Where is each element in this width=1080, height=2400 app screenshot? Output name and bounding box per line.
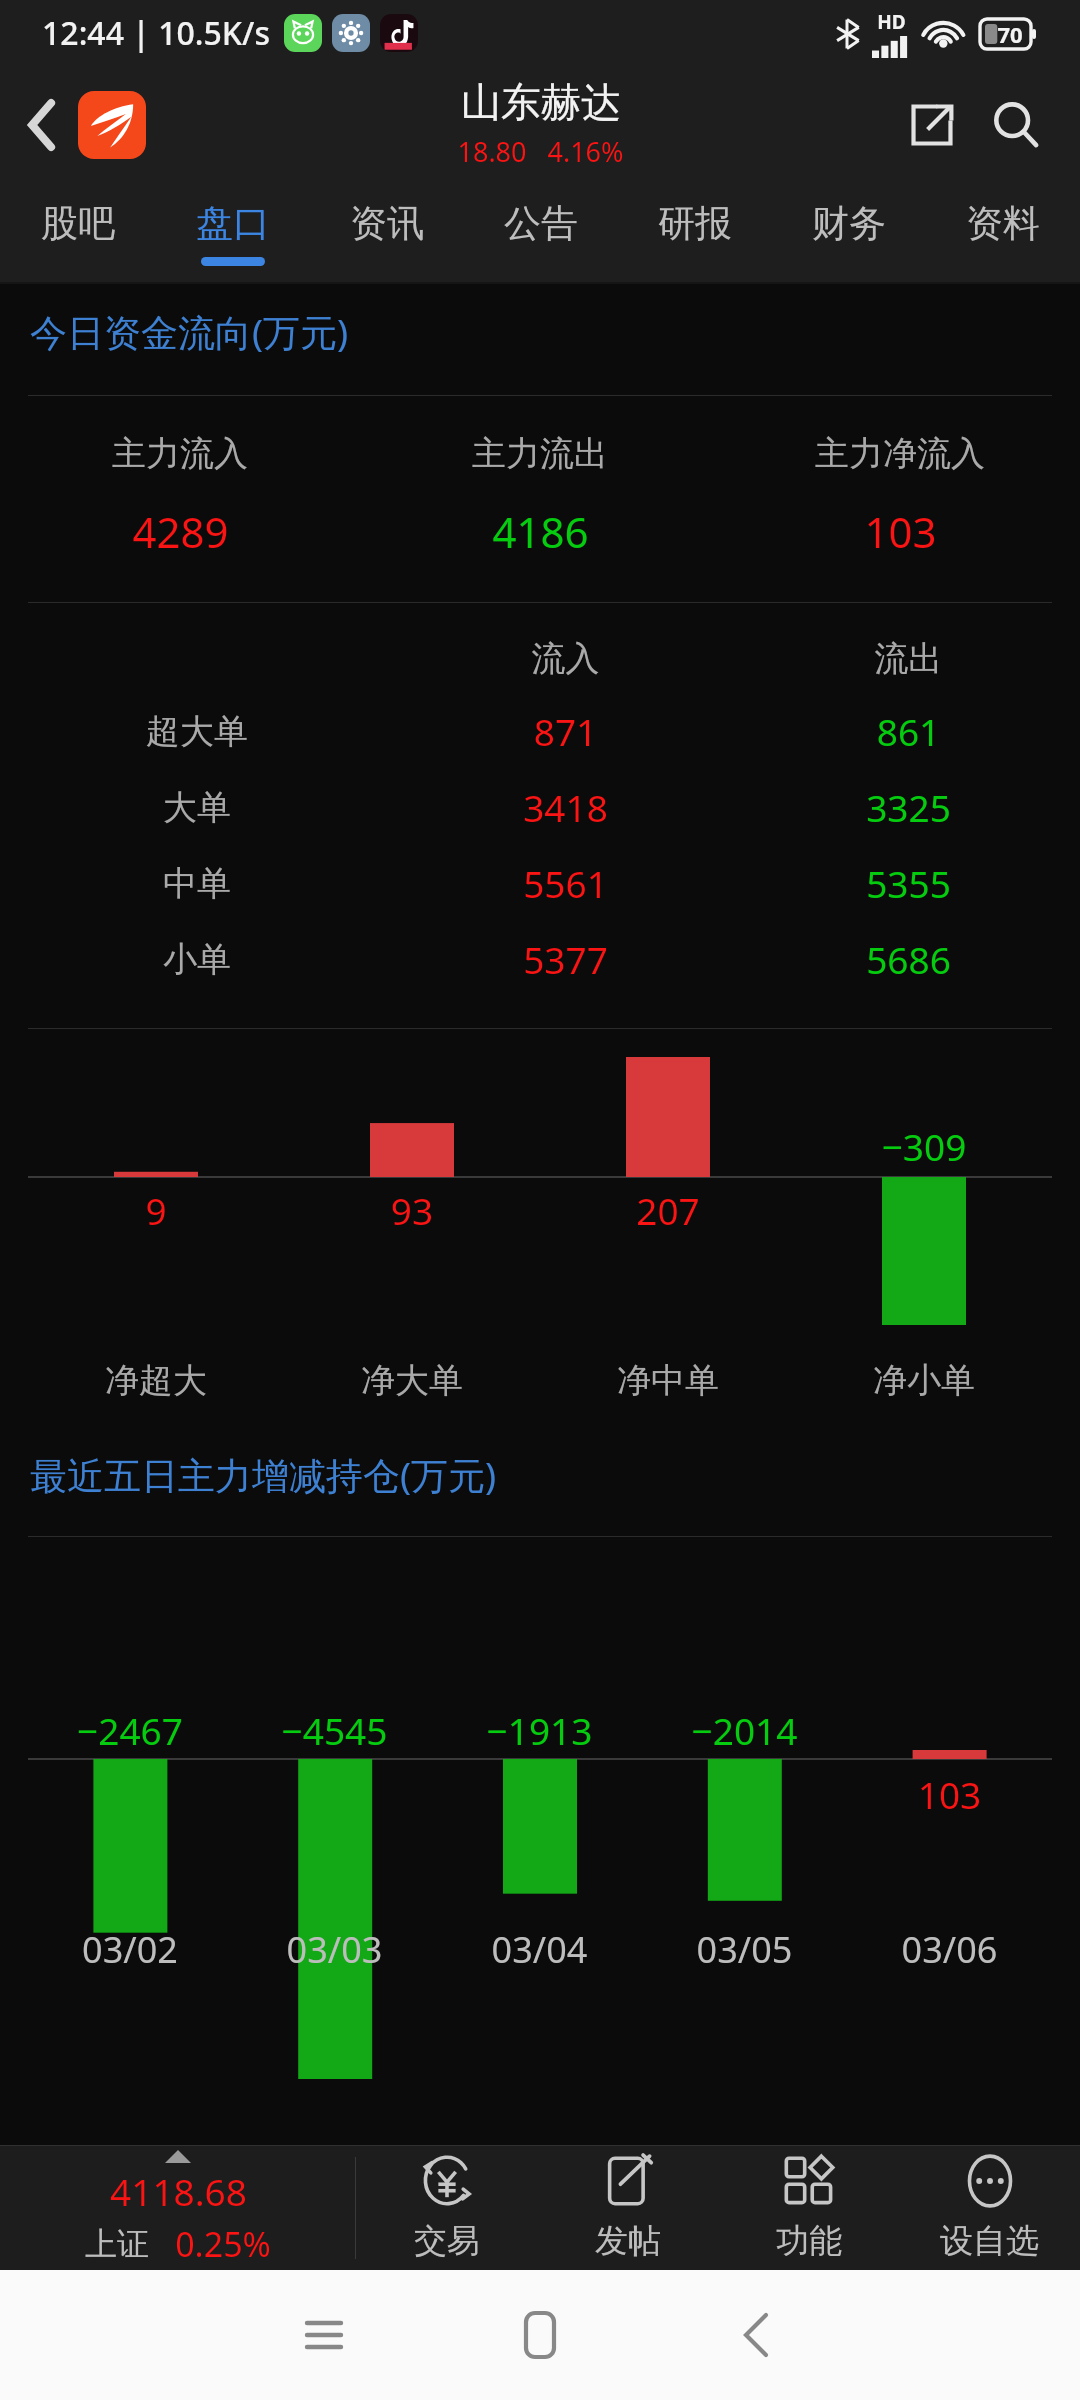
button[interactable]: 设自选	[899, 2146, 1080, 2270]
button[interactable]: Recent apps	[216, 2270, 432, 2400]
button[interactable]: 超大单	[0, 706, 1080, 756]
staticText: 3325	[737, 782, 1080, 832]
button[interactable]: Search	[974, 83, 1058, 167]
staticText: 流入	[394, 637, 737, 680]
staticText: 超大单	[0, 710, 394, 753]
staticText: 4289	[132, 503, 229, 560]
staticText: 交易	[414, 2220, 480, 2262]
staticText: 03/03	[232, 1925, 437, 1974]
staticText: 主力净流入	[815, 432, 985, 475]
staticText: 5686	[737, 934, 1080, 984]
staticText: −2467	[28, 1705, 232, 1755]
staticText: 4.16%	[547, 133, 624, 170]
staticText: 18.80	[457, 133, 527, 170]
staticText: 资料	[966, 200, 1040, 247]
button[interactable]: 发帖	[537, 2146, 718, 2270]
button[interactable]: 研报	[618, 184, 772, 282]
staticText: 9	[28, 1185, 284, 1235]
staticText: 山东赫达	[461, 77, 621, 127]
staticText: 5561	[394, 858, 737, 908]
staticText: 公告	[504, 200, 578, 247]
staticText: 净大单	[284, 1359, 540, 1402]
staticText: 资讯	[350, 200, 424, 247]
staticText: 设自选	[940, 2220, 1039, 2262]
staticText: 盘口	[196, 200, 270, 247]
staticText: 中单	[0, 862, 394, 905]
staticText: −4545	[232, 1705, 437, 1755]
staticText: 小单	[0, 938, 394, 981]
staticText: 03/05	[642, 1925, 847, 1974]
staticText: 主力流入	[112, 432, 248, 475]
staticText: 股吧	[41, 200, 115, 247]
staticText: 871	[394, 706, 737, 756]
staticText: 发帖	[595, 2220, 661, 2262]
button[interactable]: Share	[890, 83, 974, 167]
staticText: 03/04	[437, 1925, 642, 1974]
staticText: −1913	[437, 1705, 642, 1755]
staticText: 103	[847, 1769, 1052, 1819]
staticText: 93	[284, 1185, 540, 1235]
button[interactable]: Back	[0, 83, 84, 167]
staticText: 财务	[812, 200, 886, 247]
staticText: 上证	[85, 2224, 149, 2264]
staticText: 5355	[737, 858, 1080, 908]
staticText: 净小单	[796, 1359, 1052, 1402]
button[interactable]: App home	[78, 91, 146, 159]
staticText: 功能	[776, 2220, 842, 2262]
button[interactable]: 中单	[0, 858, 1080, 908]
button[interactable]: 小单	[0, 934, 1080, 984]
button[interactable]: 功能	[718, 2146, 899, 2270]
button[interactable]: 盘口	[155, 184, 310, 282]
button[interactable]: 大单	[0, 782, 1080, 832]
button[interactable]: 交易	[356, 2146, 537, 2270]
staticText: HD	[877, 9, 906, 35]
staticText: 主力流出	[472, 432, 608, 475]
button[interactable]: 4118.68	[0, 2146, 355, 2270]
staticText: 净超大	[28, 1359, 284, 1402]
staticText: 0.25%	[175, 2221, 271, 2267]
button[interactable]: Back	[648, 2270, 864, 2400]
staticText: −2014	[642, 1705, 847, 1755]
staticText: 12:44 | 10.5K/s	[42, 11, 270, 55]
staticText: 研报	[658, 200, 732, 247]
button[interactable]: 资讯	[310, 184, 464, 282]
staticText: 4118.68	[110, 2166, 247, 2216]
staticText: 3418	[394, 782, 737, 832]
staticText: 861	[737, 706, 1080, 756]
staticText: −309	[796, 1121, 1052, 1171]
staticText: 207	[540, 1185, 796, 1235]
button[interactable]: 资料	[926, 184, 1080, 282]
staticText: 03/02	[28, 1925, 232, 1974]
staticText: 大单	[0, 786, 394, 829]
staticText: 净中单	[540, 1359, 796, 1402]
staticText: 5377	[394, 934, 737, 984]
button[interactable]: 财务	[772, 184, 926, 282]
button[interactable]: 股吧	[0, 184, 155, 282]
button[interactable]: 公告	[464, 184, 618, 282]
staticText: 流出	[737, 637, 1080, 680]
staticText: 03/06	[847, 1925, 1052, 1974]
staticText: 103	[864, 503, 937, 560]
staticText: 70	[997, 19, 1023, 49]
button[interactable]: Home	[432, 2270, 648, 2400]
staticText: 4186	[492, 503, 589, 560]
staticText: 今日资金流向(万元)	[30, 306, 349, 357]
staticText: 最近五日主力增减持仓(万元)	[30, 1449, 497, 1500]
